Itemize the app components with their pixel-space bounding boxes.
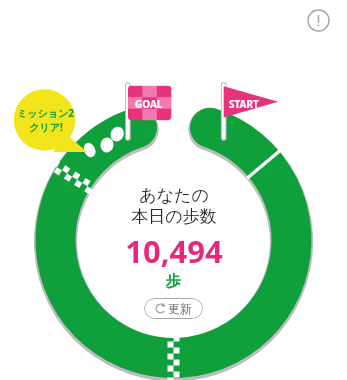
staticText: GOAL bbox=[135, 97, 163, 111]
staticText: ミッション2 bbox=[17, 106, 74, 120]
staticText: 本日の歩数 bbox=[131, 206, 217, 227]
staticText: START bbox=[229, 97, 259, 111]
button[interactable]: 更新 bbox=[144, 298, 203, 319]
button[interactable]: Start bbox=[216, 84, 280, 138]
button[interactable]: Goal bbox=[118, 84, 176, 138]
button[interactable]: Information bbox=[302, 4, 334, 36]
staticText: 10,494 bbox=[125, 230, 223, 272]
button[interactable]: ミッション2 bbox=[6, 83, 88, 165]
staticText: 更新 bbox=[168, 301, 192, 316]
staticText: クリア! bbox=[29, 120, 63, 134]
staticText: 歩 bbox=[166, 272, 181, 291]
staticText: あなたの bbox=[139, 185, 209, 206]
